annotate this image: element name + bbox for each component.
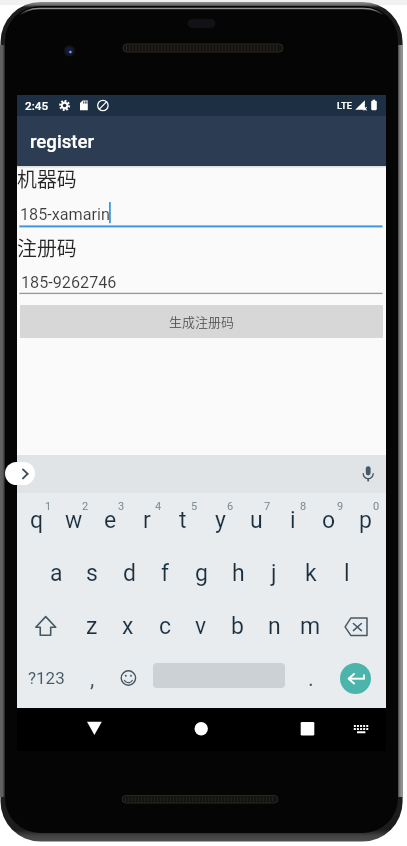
button[interactable]: Voice input: [356, 462, 380, 486]
button[interactable]: [292, 659, 329, 708]
staticText: u: [250, 507, 263, 534]
button[interactable]: 生成注册码: [20, 305, 383, 338]
button[interactable]: [256, 553, 292, 606]
staticText: 生成注册码: [169, 312, 235, 331]
staticText: p: [359, 507, 372, 534]
button[interactable]: [219, 606, 255, 659]
button[interactable]: Switch keyboard: [346, 708, 386, 751]
button[interactable]: [19, 500, 55, 553]
button[interactable]: [92, 500, 128, 553]
staticText: 0: [373, 500, 380, 513]
staticText: y: [215, 507, 226, 534]
staticText: 5: [191, 500, 198, 513]
button[interactable]: [129, 500, 165, 553]
staticText: 185-xamarin: [20, 205, 110, 224]
button[interactable]: [329, 553, 365, 606]
button[interactable]: [74, 553, 110, 606]
button[interactable]: [165, 500, 201, 553]
staticText: 7: [264, 500, 271, 513]
button[interactable]: [274, 500, 310, 553]
button[interactable]: [220, 553, 256, 606]
staticText: a: [50, 560, 63, 587]
staticText: f: [161, 560, 169, 587]
button[interactable]: [19, 659, 71, 708]
staticText: n: [268, 613, 281, 640]
button[interactable]: [183, 553, 219, 606]
button[interactable]: Expand toolbar: [5, 462, 35, 485]
staticText: 185-9262746: [21, 273, 117, 292]
staticText: LTE: [337, 100, 353, 111]
button[interactable]: Recent apps: [269, 708, 346, 751]
button[interactable]: Backspace: [329, 606, 384, 659]
staticText: 2: [82, 500, 89, 513]
button[interactable]: [146, 606, 182, 659]
staticText: b: [231, 613, 244, 640]
staticText: 注册码: [17, 233, 77, 262]
button[interactable]: [110, 606, 146, 659]
staticText: g: [195, 560, 208, 587]
button[interactable]: Back: [74, 708, 151, 751]
staticText: c: [159, 613, 172, 640]
button[interactable]: [56, 500, 92, 553]
staticText: z: [86, 613, 98, 640]
staticText: .: [308, 666, 314, 692]
button[interactable]: Emoji: [110, 659, 147, 708]
staticText: k: [305, 560, 317, 587]
staticText: s: [86, 560, 98, 587]
button[interactable]: [311, 500, 347, 553]
staticText: x: [122, 613, 134, 640]
button[interactable]: Enter: [340, 663, 371, 694]
staticText: 2:45: [25, 99, 49, 113]
button[interactable]: [37, 553, 73, 606]
staticText: e: [104, 507, 117, 534]
button[interactable]: [293, 553, 329, 606]
staticText: register: [30, 131, 94, 153]
staticText: l: [344, 560, 350, 587]
button[interactable]: [73, 606, 109, 659]
button[interactable]: [110, 553, 146, 606]
button[interactable]: [347, 500, 383, 553]
staticText: 8: [300, 500, 307, 513]
staticText: 9: [337, 500, 344, 513]
button[interactable]: [201, 500, 237, 553]
button[interactable]: Shift: [19, 606, 73, 659]
staticText: ?123: [28, 668, 65, 688]
staticText: o: [322, 507, 336, 534]
staticText: m: [300, 613, 321, 640]
staticText: t: [179, 507, 187, 534]
button[interactable]: [238, 500, 274, 553]
staticText: w: [65, 507, 83, 534]
staticText: i: [290, 507, 296, 534]
button[interactable]: [292, 606, 328, 659]
button[interactable]: [183, 606, 219, 659]
staticText: v: [195, 613, 207, 640]
staticText: 6: [227, 500, 234, 513]
staticText: 4: [155, 500, 162, 513]
staticText: h: [232, 560, 245, 587]
button[interactable]: [147, 553, 183, 606]
staticText: r: [143, 507, 151, 534]
staticText: 机器码: [17, 164, 77, 193]
button[interactable]: Home: [163, 708, 240, 751]
button[interactable]: [256, 606, 292, 659]
staticText: q: [30, 507, 44, 534]
staticText: 1: [45, 500, 52, 513]
button[interactable]: [73, 659, 110, 708]
staticText: d: [123, 560, 136, 587]
staticText: 3: [118, 500, 125, 513]
staticText: j: [271, 560, 277, 587]
staticText: ,: [90, 666, 95, 692]
